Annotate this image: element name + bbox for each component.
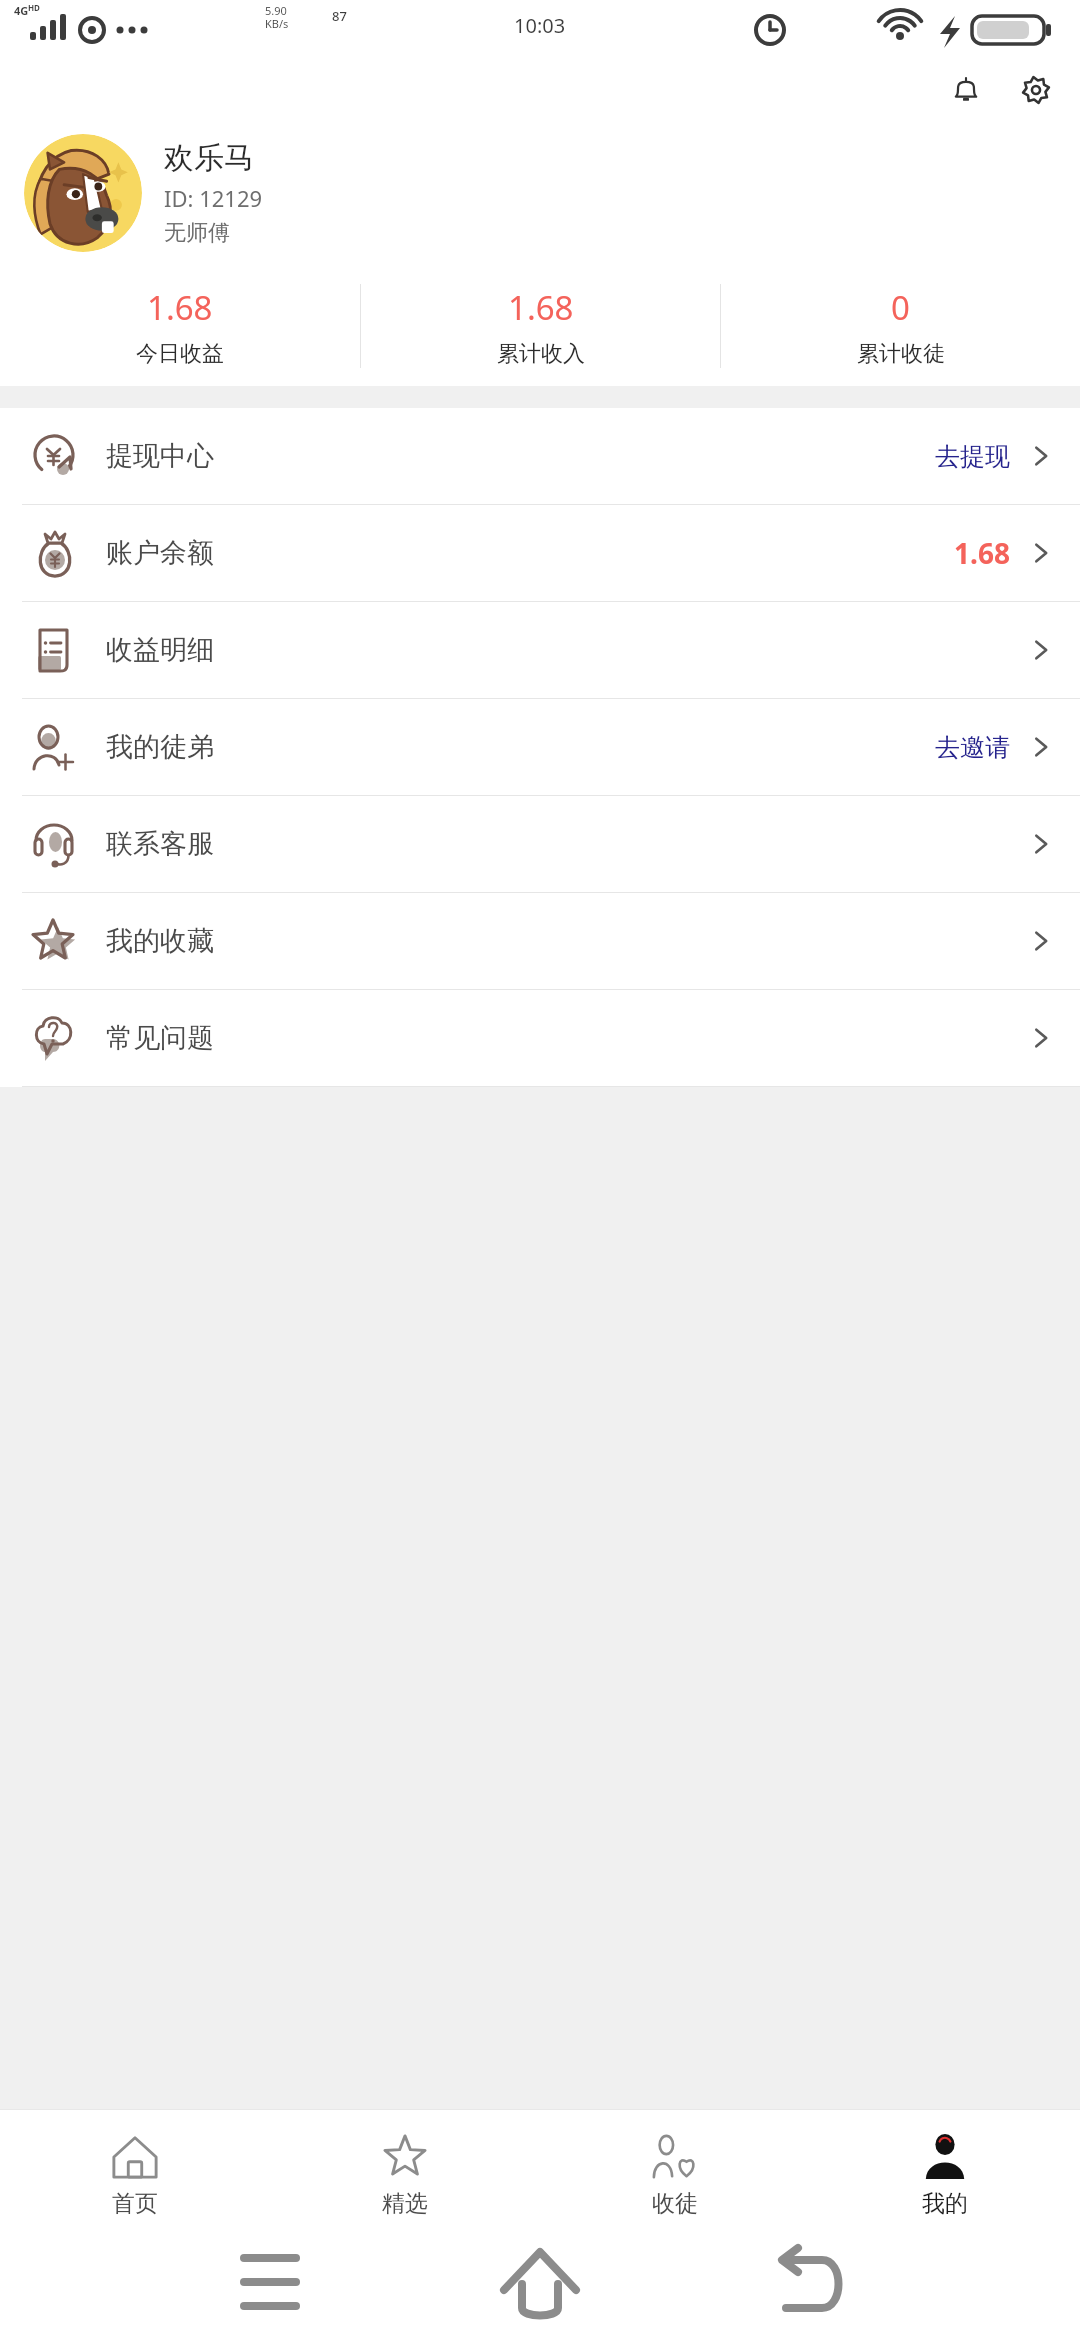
button[interactable]: Settings xyxy=(1008,62,1064,118)
staticText: 常见问题 xyxy=(106,1021,214,1055)
staticText: 10:03 xyxy=(514,12,566,39)
button[interactable]: 我的徒弟 xyxy=(0,699,1080,795)
staticText: 首页 xyxy=(112,2189,158,2218)
button[interactable]: 收徒 xyxy=(540,2110,810,2240)
staticText: 5.90 xyxy=(265,3,287,18)
staticText: 累计收入 xyxy=(497,340,585,368)
staticText: 收益明细 xyxy=(106,633,214,667)
button[interactable]: 联系客服 xyxy=(0,796,1080,892)
staticText: 我的收藏 xyxy=(106,924,214,958)
staticText: 今日收益 xyxy=(136,340,224,368)
staticText: 我的 xyxy=(922,2189,968,2218)
button[interactable]: 1.68 xyxy=(0,285,360,368)
staticText: 4G xyxy=(14,3,29,18)
staticText: KB/s xyxy=(265,16,289,31)
staticText: 1.68 xyxy=(147,285,213,330)
staticText: 欢乐马 xyxy=(164,139,254,177)
staticText: 收徒 xyxy=(652,2189,698,2218)
button[interactable]: 账户余额 xyxy=(0,505,1080,601)
staticText: 累计收徒 xyxy=(857,340,945,368)
staticText: 提现中心 xyxy=(106,439,214,473)
button[interactable]: 收益明细 xyxy=(0,602,1080,698)
button[interactable]: 我的 xyxy=(810,2110,1080,2240)
button[interactable]: 0 xyxy=(721,285,1080,368)
button[interactable]: 我的收藏 xyxy=(0,893,1080,989)
staticText: 去提现 xyxy=(935,441,1010,472)
button[interactable]: 提现中心 xyxy=(0,408,1080,504)
staticText: ID: 12129 xyxy=(164,183,263,213)
button[interactable]: 常见问题 xyxy=(0,990,1080,1086)
button[interactable]: Notifications xyxy=(938,62,994,118)
button[interactable]: 1.68 xyxy=(361,285,720,368)
staticText: 1.68 xyxy=(508,285,574,330)
staticText: 去邀请 xyxy=(935,732,1010,763)
staticText: 87 xyxy=(332,7,347,25)
button[interactable]: 首页 xyxy=(0,2110,270,2240)
staticText: 账户余额 xyxy=(106,536,214,570)
button[interactable]: 精选 xyxy=(270,2110,540,2240)
staticText: 联系客服 xyxy=(106,827,214,861)
staticText: 无师傅 xyxy=(164,219,230,247)
staticText: 1.68 xyxy=(954,534,1010,572)
staticText: 0 xyxy=(891,285,910,330)
staticText: 精选 xyxy=(382,2189,428,2218)
staticText: HD xyxy=(28,2,40,13)
staticText: 我的徒弟 xyxy=(106,730,214,764)
